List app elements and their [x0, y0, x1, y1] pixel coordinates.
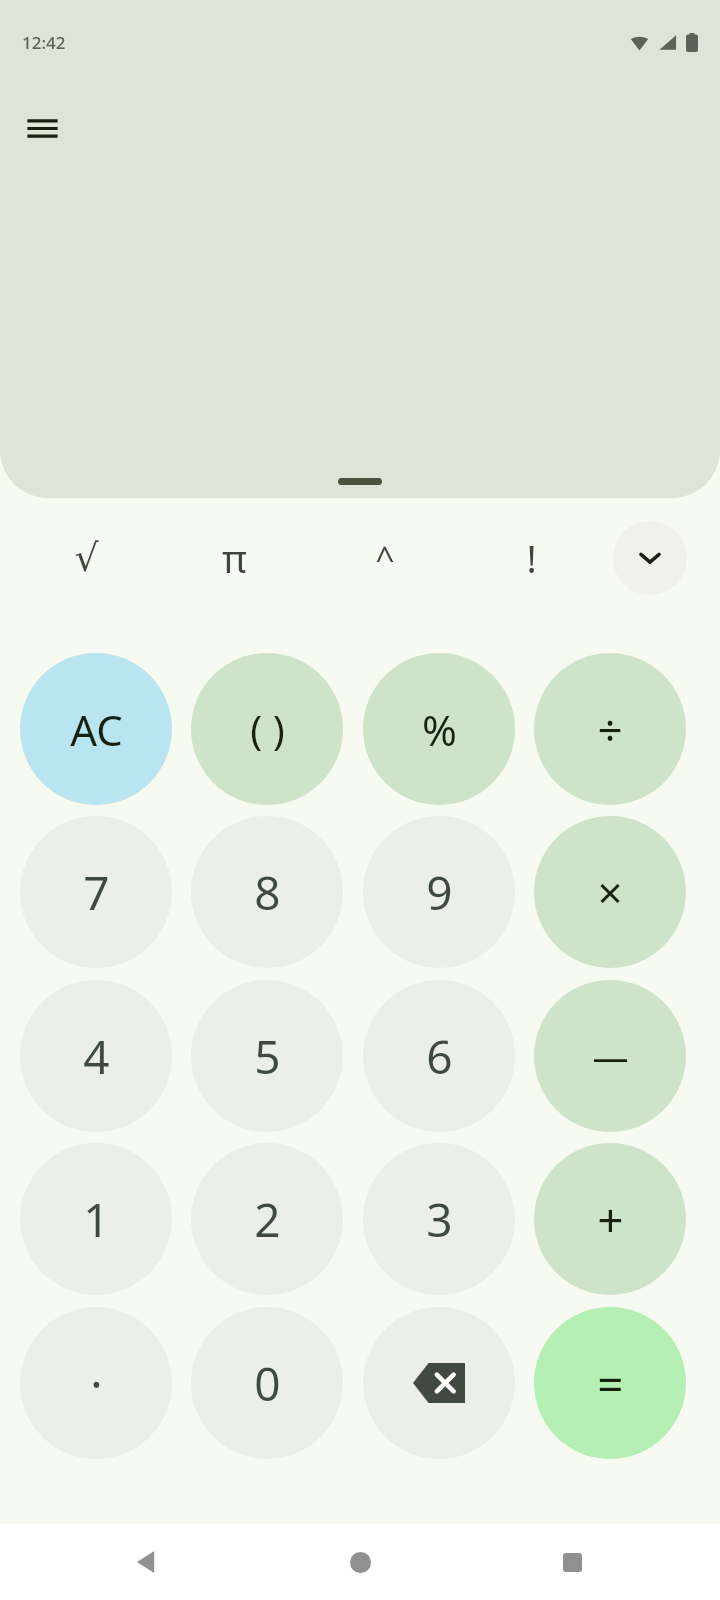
button[interactable]: ( )	[191, 653, 343, 805]
button[interactable]: +	[534, 1143, 686, 1295]
button[interactable]: 8	[191, 816, 343, 968]
button[interactable]: %	[363, 653, 515, 805]
staticText: ^	[375, 535, 395, 581]
button[interactable]: 2	[191, 1143, 343, 1295]
staticText: 3	[426, 1188, 453, 1251]
button[interactable]: 1	[20, 1143, 172, 1295]
button[interactable]: ×	[534, 816, 686, 968]
staticText: !	[526, 532, 537, 584]
button[interactable]: ^	[348, 521, 422, 595]
staticText: +	[597, 1188, 624, 1251]
button[interactable]: 6	[363, 980, 515, 1132]
button[interactable]: π	[197, 521, 271, 595]
staticText: 12:42	[22, 31, 66, 54]
button[interactable]: Recents	[544, 1534, 600, 1590]
button[interactable]: 7	[20, 816, 172, 968]
button[interactable]: Back	[120, 1534, 176, 1590]
button[interactable]: Home	[332, 1534, 388, 1590]
staticText: 0	[254, 1352, 281, 1415]
staticText: ÷	[597, 699, 623, 759]
button[interactable]: 4	[20, 980, 172, 1132]
staticText: ·	[90, 1352, 103, 1415]
button[interactable]: =	[534, 1307, 686, 1459]
button[interactable]: ·	[20, 1307, 172, 1459]
button[interactable]: !	[494, 521, 568, 595]
staticText: AC	[70, 701, 123, 758]
button[interactable]: 0	[191, 1307, 343, 1459]
staticText: 2	[254, 1188, 281, 1251]
button[interactable]: 3	[363, 1143, 515, 1295]
button[interactable]: ÷	[534, 653, 686, 805]
staticText: 6	[426, 1025, 453, 1088]
staticText: =	[597, 1352, 624, 1415]
button[interactable]: —	[534, 980, 686, 1132]
staticText: 4	[83, 1025, 110, 1088]
button[interactable]: 5	[191, 980, 343, 1132]
staticText: 8	[254, 861, 281, 924]
staticText: 7	[83, 861, 110, 924]
staticText: ( )	[250, 702, 285, 756]
button[interactable]: Menu	[10, 96, 74, 160]
button[interactable]: √	[49, 521, 123, 595]
button[interactable]: AC	[20, 653, 172, 805]
staticText: π	[222, 532, 247, 584]
button[interactable]: Backspace	[363, 1307, 515, 1459]
staticText: —	[592, 1032, 629, 1081]
staticText: 5	[254, 1025, 281, 1088]
staticText: ×	[597, 862, 623, 922]
staticText: 9	[426, 861, 453, 924]
staticText: %	[422, 701, 457, 758]
button[interactable]: Expand	[613, 521, 687, 595]
staticText: 1	[83, 1188, 110, 1251]
staticText: √	[74, 536, 99, 580]
button[interactable]: 9	[363, 816, 515, 968]
